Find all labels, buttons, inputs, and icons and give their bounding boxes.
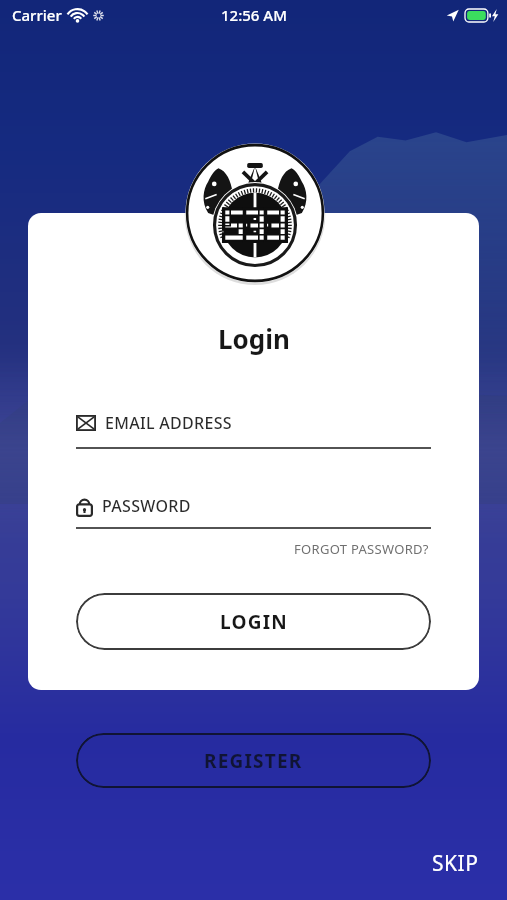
button[interactable]: REGISTER xyxy=(76,733,431,788)
button[interactable]: SKIP xyxy=(426,843,485,884)
button[interactable]: EMAIL ADDRESS xyxy=(76,412,431,449)
button[interactable]: PASSWORD xyxy=(76,495,431,529)
staticText: PASSWORD xyxy=(102,495,191,517)
staticText: Login xyxy=(218,321,290,356)
staticText: Carrier xyxy=(12,5,62,25)
staticText: REGISTER xyxy=(204,748,303,774)
staticText: LOGIN xyxy=(220,609,288,635)
staticText: FORGOT PASSWORD? xyxy=(294,540,429,558)
button[interactable]: LOGIN xyxy=(76,593,431,650)
button[interactable]: FORGOT PASSWORD? xyxy=(292,538,431,560)
staticText: 12:56 AM xyxy=(221,5,287,25)
staticText: SKIP xyxy=(432,849,479,878)
staticText: EMAIL ADDRESS xyxy=(105,412,232,434)
